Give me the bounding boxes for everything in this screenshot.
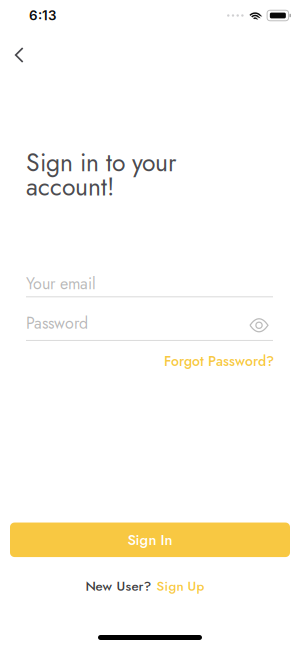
- staticText: Your email: [26, 276, 96, 291]
- button[interactable]: Show password: [250, 317, 273, 330]
- staticText: 6:13: [29, 8, 56, 23]
- staticText: Sign In: [127, 533, 172, 546]
- staticText: New User?: [85, 580, 151, 592]
- button[interactable]: Back: [0, 48, 33, 62]
- button[interactable]: Sign In: [0, 523, 300, 557]
- button[interactable]: Forgot Password?: [164, 355, 274, 367]
- staticText: Sign Up: [156, 580, 204, 592]
- staticText: Sign in to your account!: [26, 150, 176, 199]
- staticText: Password: [26, 316, 88, 330]
- staticText: Forgot Password?: [164, 355, 274, 367]
- button[interactable]: Sign Up: [156, 580, 204, 592]
